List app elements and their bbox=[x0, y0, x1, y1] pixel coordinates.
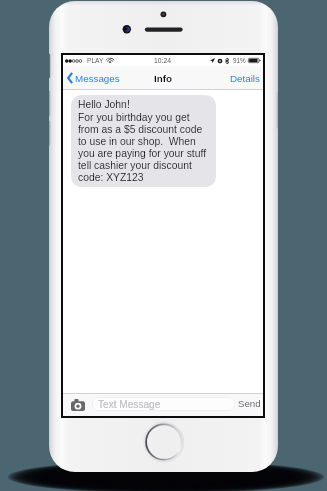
staticText: 10:24 bbox=[154, 57, 172, 65]
staticText: PLAY bbox=[87, 57, 104, 64]
button[interactable]: Messages bbox=[63, 68, 125, 88]
button[interactable]: Details bbox=[227, 69, 263, 88]
button[interactable]: Take photo bbox=[70, 398, 86, 412]
staticText: Info bbox=[154, 73, 172, 84]
button[interactable]: Hello John! For you birthday you get fro… bbox=[71, 95, 216, 187]
staticText: Hello John! For you birthday you get fro… bbox=[78, 99, 207, 183]
button[interactable]: Send bbox=[236, 395, 263, 412]
staticText: Text Message bbox=[98, 399, 161, 410]
staticText: 91% bbox=[233, 57, 246, 64]
staticText: Messages bbox=[75, 73, 120, 84]
button[interactable]: Text Message bbox=[92, 397, 235, 411]
